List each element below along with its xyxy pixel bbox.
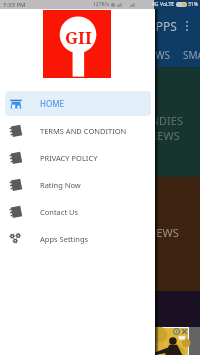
button[interactable]: Contact Us <box>5 199 151 224</box>
staticText: 4G <box>152 1 159 8</box>
button[interactable]: Apps Settings <box>5 226 151 251</box>
button[interactable]: PRIVACY POLICY <box>5 145 151 170</box>
staticText: TERMS AND CONDITION <box>40 126 127 136</box>
staticText: 127K/s <box>93 1 109 8</box>
staticText: VoLTE <box>160 1 175 8</box>
staticText: 7:33 PM <box>3 1 26 9</box>
staticText: Rating Now <box>40 180 81 190</box>
button[interactable]: Close ad <box>181 328 188 335</box>
button[interactable]: Rating Now <box>5 172 151 197</box>
button[interactable]: Ad info <box>0 327 189 355</box>
staticText: NEWS <box>142 48 170 62</box>
staticText: SMA <box>183 48 200 62</box>
button[interactable]: More options <box>186 21 188 31</box>
button[interactable]: NEWS <box>142 48 170 62</box>
staticText: NEWS <box>148 225 179 240</box>
staticText: PRIVACY POLICY <box>40 153 98 163</box>
staticText: NEWS <box>149 128 180 143</box>
button[interactable]: Ad info <box>173 328 180 335</box>
staticText: GII <box>65 26 92 49</box>
button[interactable]: SMA <box>183 48 200 62</box>
staticText: HOME <box>40 98 64 109</box>
button[interactable]: TERMS AND CONDITION <box>5 118 151 143</box>
staticText: APPS <box>148 18 177 34</box>
staticText: Contact Us <box>40 207 79 217</box>
staticText: INDIES <box>147 113 184 128</box>
staticText: Apps Settings <box>40 234 89 244</box>
staticText: 31% <box>188 1 198 8</box>
button[interactable]: HOME <box>5 91 151 116</box>
